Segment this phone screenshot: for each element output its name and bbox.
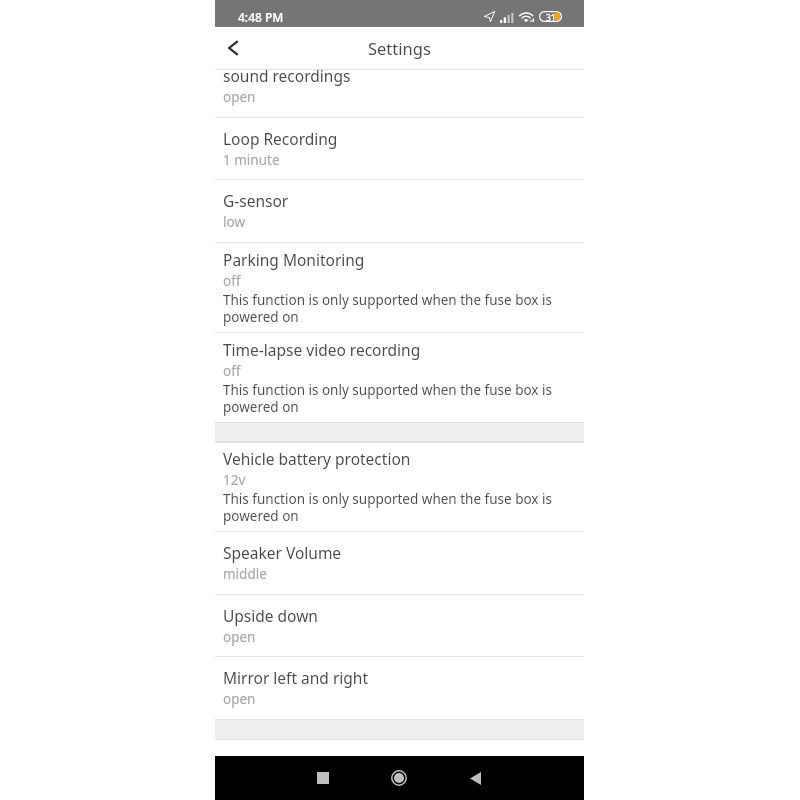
staticText: 12v [223, 471, 246, 489]
staticText: 31 [546, 12, 556, 23]
staticText: open [223, 690, 256, 708]
button[interactable]: Recents [302, 756, 344, 800]
staticText: Mirror left and right [223, 667, 369, 688]
staticText: Parking Monitoring [223, 249, 365, 270]
staticText: 1 minute [223, 151, 280, 169]
staticText: Settings [368, 37, 431, 59]
staticText: Vehicle battery protection [223, 448, 411, 469]
button[interactable]: Vehicle battery protection [215, 441, 584, 531]
button[interactable]: sound recordings [215, 69, 584, 117]
staticText: off [223, 362, 241, 380]
button[interactable]: Back [454, 756, 496, 800]
staticText: Speaker Volume [223, 542, 342, 563]
button[interactable]: Home [378, 756, 420, 800]
staticText: Time-lapse video recording [223, 339, 421, 360]
staticText: low [223, 213, 245, 231]
staticText: open [223, 88, 256, 106]
staticText: G-sensor [223, 190, 289, 211]
staticText: This function is only supported when the… [223, 490, 563, 525]
button[interactable]: Loop Recording [215, 117, 584, 179]
staticText: 4:48 PM [238, 9, 284, 25]
button[interactable]: Upside down [215, 594, 584, 656]
staticText: off [223, 272, 241, 290]
staticText: open [223, 628, 256, 646]
staticText: This function is only supported when the… [223, 381, 563, 416]
staticText: This function is only supported when the… [223, 291, 563, 326]
button[interactable]: Back [218, 26, 258, 69]
button[interactable]: Parking Monitoring [215, 242, 584, 332]
staticText: Upside down [223, 605, 318, 626]
button[interactable]: Mirror left and right [215, 656, 584, 718]
staticText: middle [223, 565, 267, 583]
button[interactable]: Time-lapse video recording [215, 332, 584, 422]
staticText: Loop Recording [223, 128, 338, 149]
button[interactable]: Speaker Volume [215, 531, 584, 593]
button[interactable]: G-sensor [215, 179, 584, 241]
staticText: sound recordings [223, 65, 351, 86]
